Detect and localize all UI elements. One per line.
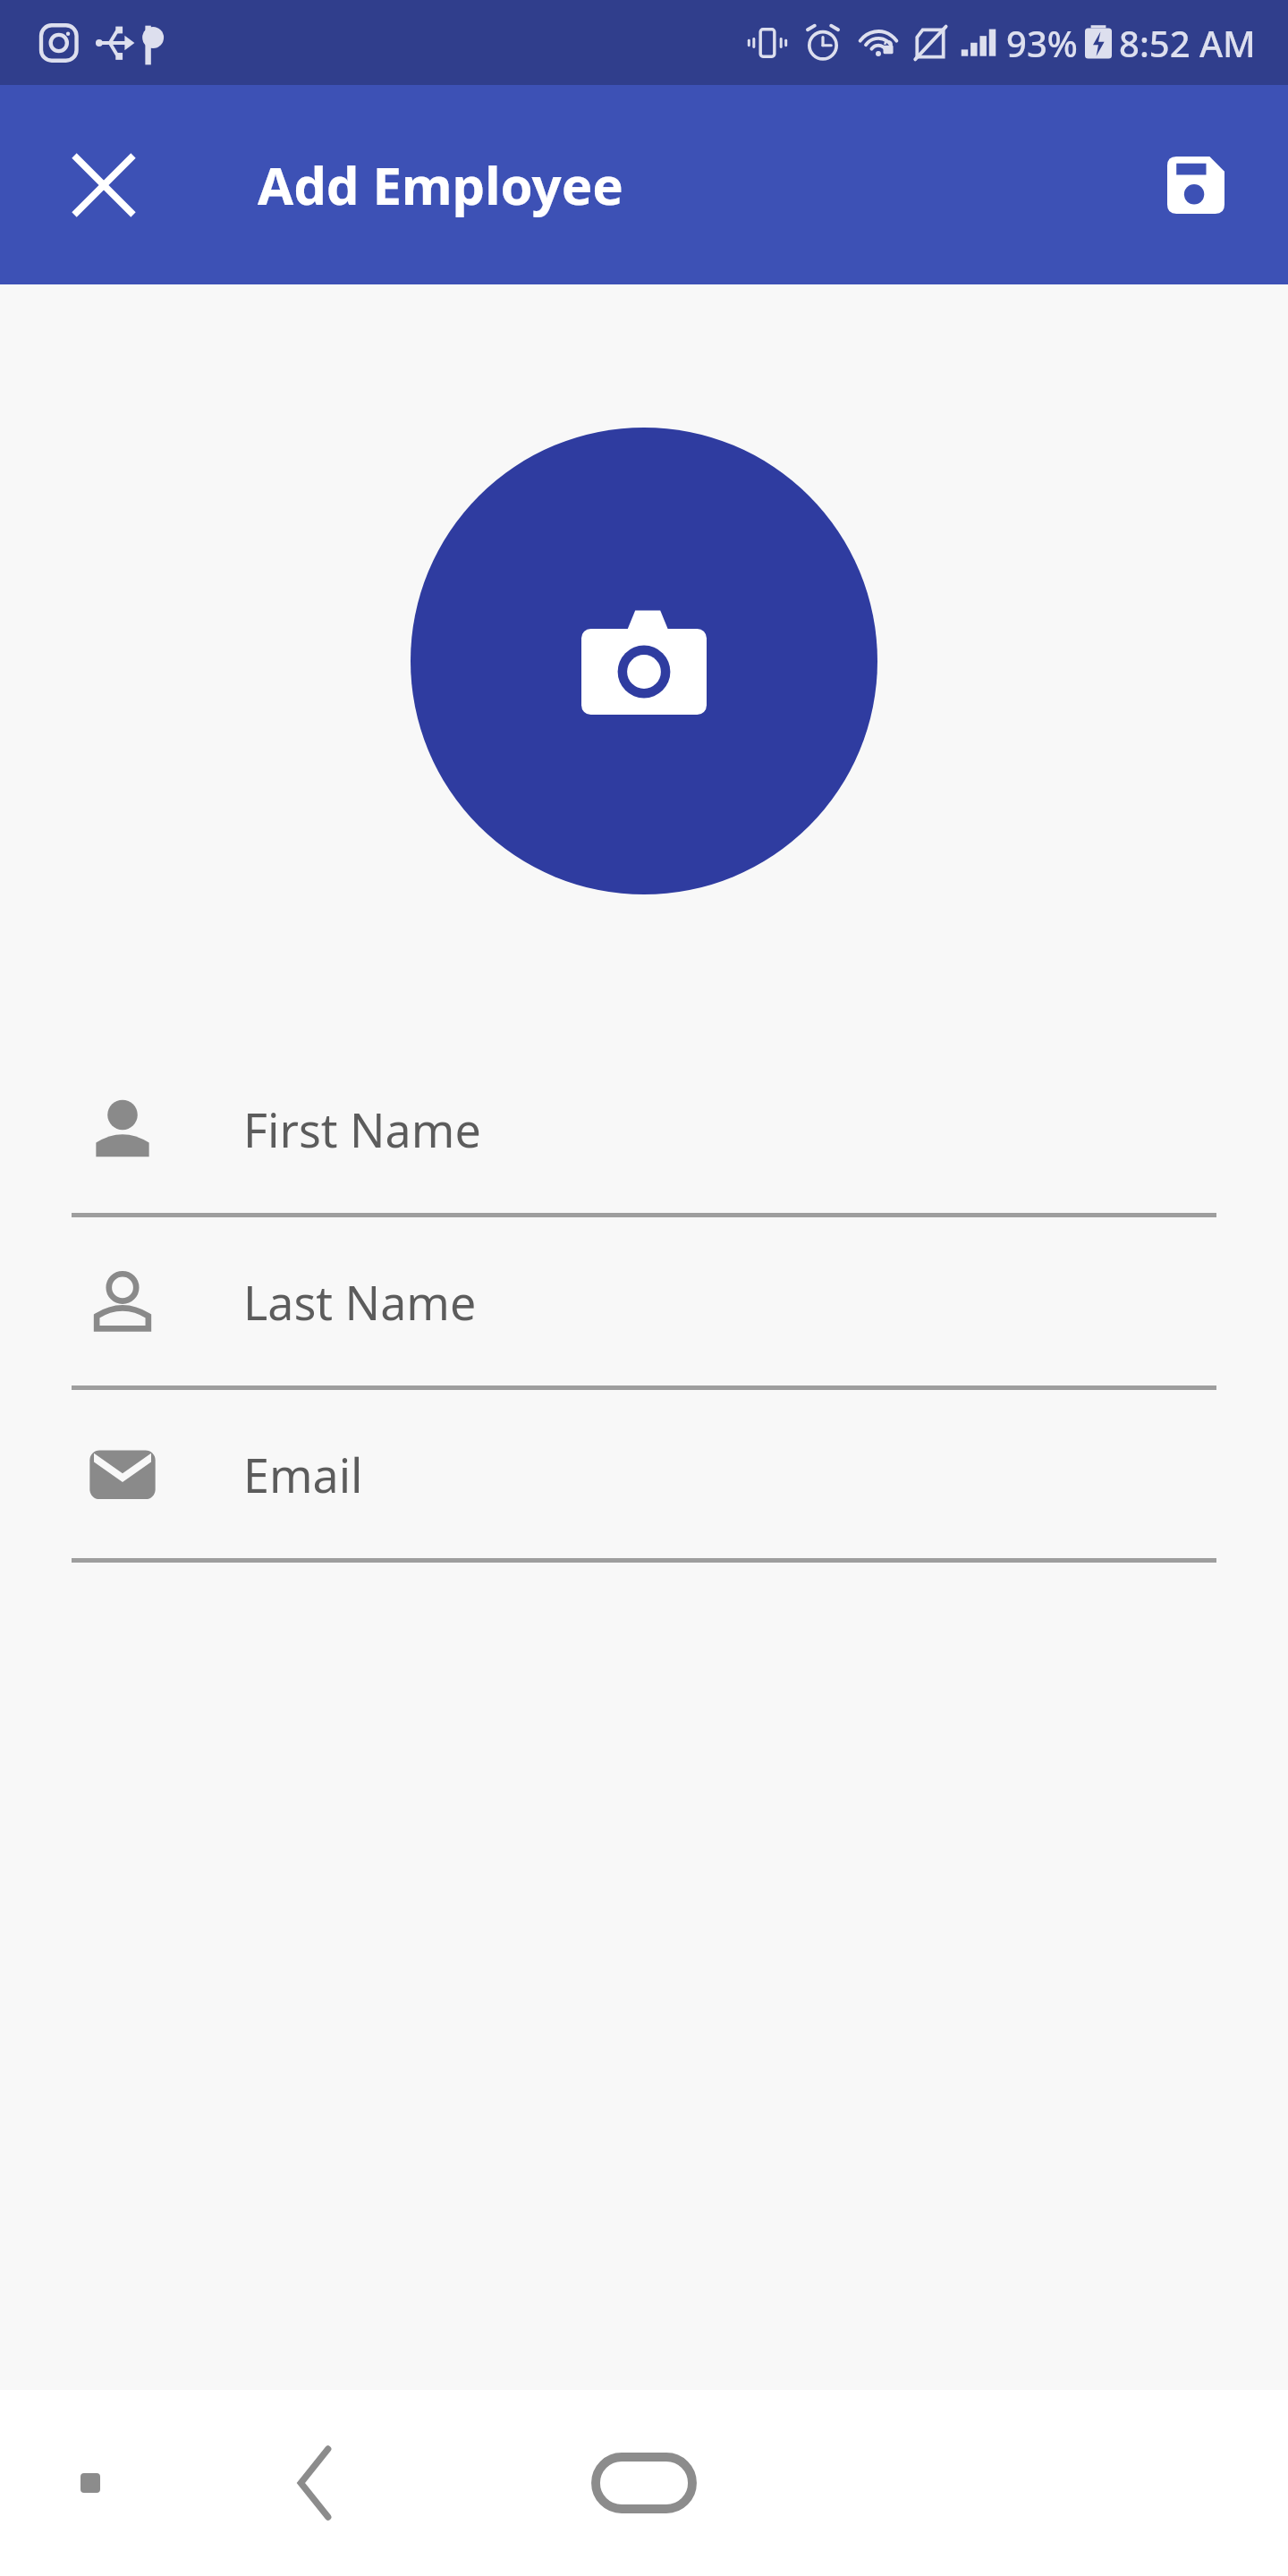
button[interactable]: Recents	[41, 2434, 140, 2532]
staticText: 93%	[1006, 19, 1078, 67]
staticText: Last Name	[243, 1270, 477, 1334]
staticText: Add Employee	[258, 149, 623, 220]
button[interactable]: Back	[261, 2429, 369, 2537]
button[interactable]: Take photo	[411, 428, 877, 894]
button[interactable]: Home	[577, 2434, 711, 2532]
button[interactable]: Last Name	[72, 1217, 1216, 1390]
button[interactable]: Email	[72, 1390, 1216, 1563]
staticText: 8:52 AM	[1119, 19, 1256, 67]
staticText: First Name	[243, 1097, 481, 1161]
staticText: Email	[243, 1443, 363, 1506]
button[interactable]: First Name	[72, 1045, 1216, 1217]
button[interactable]: Close	[41, 123, 166, 248]
button[interactable]: Save	[1138, 127, 1254, 243]
